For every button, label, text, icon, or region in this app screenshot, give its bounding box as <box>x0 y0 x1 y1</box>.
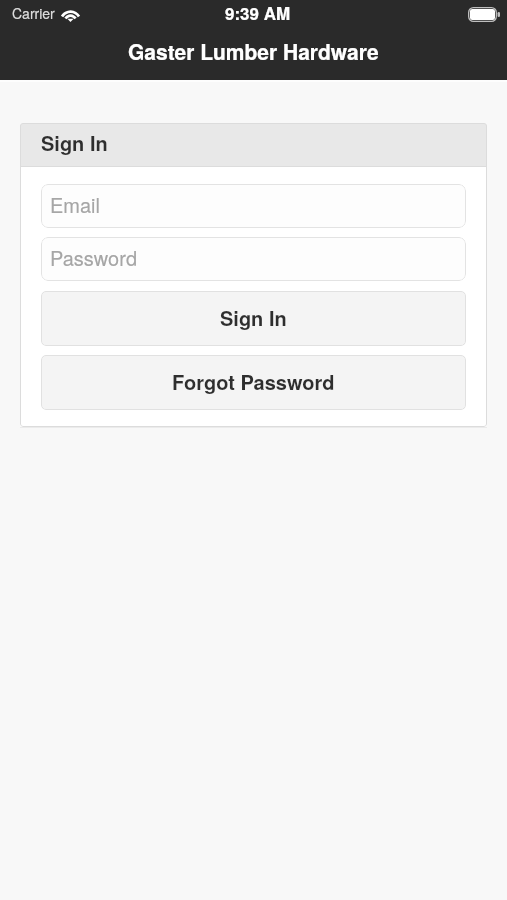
staticText: Sign In <box>41 128 108 157</box>
staticText: Sign In <box>220 303 287 332</box>
other: Wi-Fi signal <box>61 7 80 22</box>
button[interactable]: Email <box>41 184 466 228</box>
staticText: Carrier <box>12 3 55 23</box>
staticText: 9:39 AM <box>225 1 291 25</box>
staticText: Password <box>50 243 137 272</box>
staticText: Gaster Lumber Hardware <box>128 36 379 66</box>
other: Battery full <box>468 7 500 22</box>
button[interactable]: Password <box>41 237 466 281</box>
button[interactable]: Sign In <box>41 291 466 346</box>
staticText: Forgot Password <box>172 367 335 396</box>
button[interactable]: Forgot Password <box>41 355 466 410</box>
staticText: Email <box>50 190 100 219</box>
